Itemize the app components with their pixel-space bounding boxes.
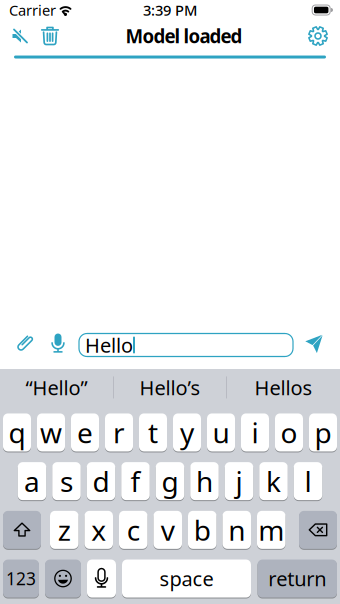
button[interactable]: e xyxy=(71,413,99,451)
staticText: c xyxy=(127,511,140,548)
button[interactable]: n xyxy=(222,511,251,549)
button[interactable]: p xyxy=(309,413,337,451)
button[interactable] xyxy=(3,511,41,549)
button[interactable]: h xyxy=(190,462,219,500)
button[interactable]: Hello xyxy=(79,333,293,356)
button[interactable]: t xyxy=(139,413,167,451)
button[interactable]: Hello’s xyxy=(114,367,226,407)
staticText: s xyxy=(60,463,73,500)
button[interactable]: u xyxy=(207,413,235,451)
button[interactable] xyxy=(38,24,62,48)
button[interactable] xyxy=(45,559,81,597)
staticText: Model loaded xyxy=(125,24,242,48)
button[interactable] xyxy=(299,511,337,549)
staticText: a xyxy=(24,463,40,500)
button[interactable]: o xyxy=(275,413,303,451)
staticText: y xyxy=(180,414,194,451)
staticText: Hellos xyxy=(254,374,312,401)
button[interactable]: r xyxy=(105,413,133,451)
staticText: h xyxy=(196,463,213,500)
button[interactable]: s xyxy=(52,462,81,500)
staticText: Hello xyxy=(85,332,133,358)
button[interactable]: x xyxy=(84,511,113,549)
button[interactable]: v xyxy=(153,511,182,549)
button[interactable]: b xyxy=(188,511,216,549)
staticText: Hello’s xyxy=(139,374,200,401)
staticText: space xyxy=(159,565,213,592)
button[interactable]: f xyxy=(121,462,150,500)
button[interactable] xyxy=(303,334,325,356)
staticText: Carrier xyxy=(9,0,56,20)
staticText: l xyxy=(304,463,311,500)
button[interactable] xyxy=(13,333,37,357)
staticText: e xyxy=(77,414,93,451)
button[interactable] xyxy=(48,334,68,356)
button[interactable]: q xyxy=(3,413,31,451)
button[interactable]: z xyxy=(50,511,78,549)
staticText: w xyxy=(40,414,62,451)
staticText: 3:39 PM xyxy=(143,0,197,20)
button[interactable]: “Hello” xyxy=(0,367,113,407)
button[interactable] xyxy=(306,24,330,48)
staticText: t xyxy=(148,414,158,451)
staticText: k xyxy=(266,463,281,500)
staticText: u xyxy=(212,414,229,451)
staticText: p xyxy=(314,414,331,451)
staticText: x xyxy=(91,511,106,548)
button[interactable]: w xyxy=(37,413,65,451)
staticText: m xyxy=(258,511,284,548)
button[interactable]: c xyxy=(119,511,147,549)
staticText: d xyxy=(92,463,109,500)
staticText: g xyxy=(161,463,178,500)
staticText: n xyxy=(228,511,245,548)
staticText: q xyxy=(8,414,25,451)
staticText: f xyxy=(130,463,140,500)
button[interactable]: l xyxy=(294,462,322,500)
staticText: 123 xyxy=(6,567,36,590)
button[interactable]: m xyxy=(257,511,285,549)
button[interactable]: space xyxy=(122,559,251,597)
button[interactable] xyxy=(8,24,32,48)
staticText: i xyxy=(251,414,258,451)
staticText: r xyxy=(113,414,125,451)
staticText: v xyxy=(161,511,175,548)
button[interactable]: j xyxy=(225,462,253,500)
staticText: return xyxy=(268,565,326,592)
button[interactable] xyxy=(87,559,116,597)
button[interactable]: k xyxy=(259,462,288,500)
button[interactable]: a xyxy=(18,462,46,500)
staticText: “Hello” xyxy=(25,374,87,401)
button[interactable]: y xyxy=(173,413,201,451)
staticText: b xyxy=(194,511,211,548)
button[interactable]: return xyxy=(257,559,337,597)
button[interactable]: 123 xyxy=(3,559,39,597)
button[interactable]: g xyxy=(156,462,184,500)
button[interactable]: Hellos xyxy=(227,367,340,407)
staticText: z xyxy=(58,511,71,548)
staticText: o xyxy=(280,414,297,451)
staticText: j xyxy=(235,463,242,500)
button[interactable]: d xyxy=(87,462,115,500)
button[interactable]: i xyxy=(241,413,269,451)
